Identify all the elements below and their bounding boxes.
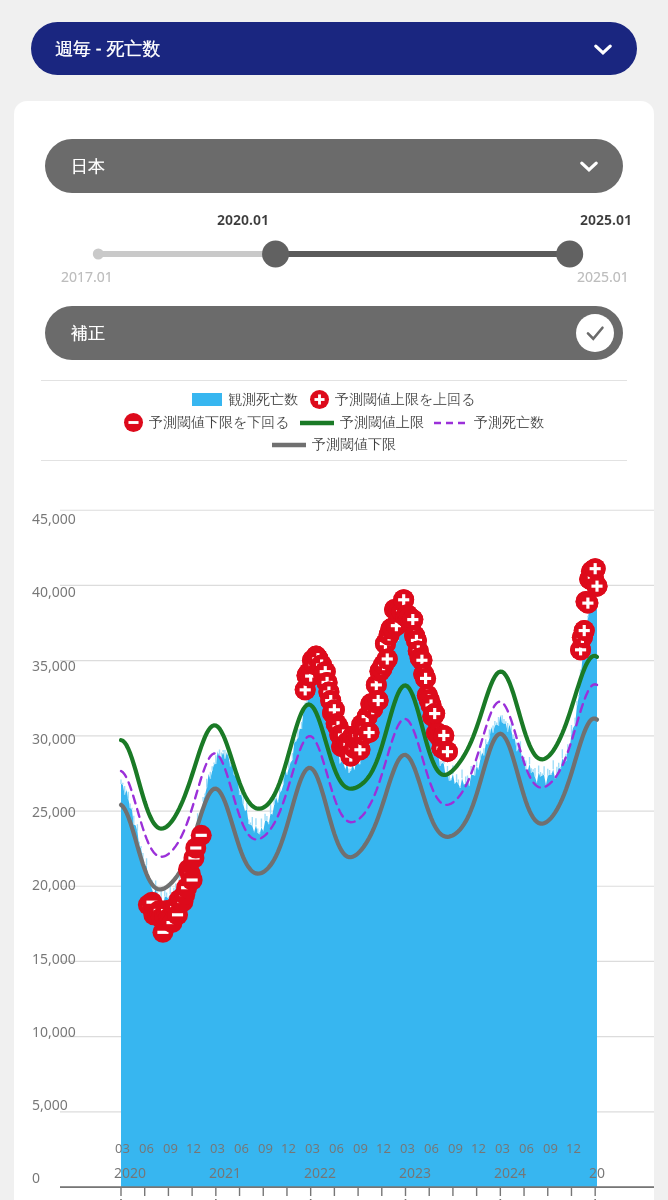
staticText: 09	[543, 1139, 558, 1157]
button[interactable]: 2020.01	[14, 210, 654, 288]
staticText: 2022	[304, 1163, 337, 1182]
staticText: 03	[115, 1139, 130, 1157]
staticText: 12	[281, 1139, 296, 1157]
staticText: 25,000	[32, 802, 76, 821]
staticText: 0	[32, 1168, 41, 1187]
staticText: 20,000	[32, 875, 76, 894]
staticText: 03	[495, 1139, 510, 1157]
staticText: 週毎 - 死亡数	[55, 36, 591, 61]
staticText: 10,000	[32, 1022, 76, 1041]
staticText: 03	[210, 1139, 225, 1157]
staticText: 2020.01	[217, 210, 269, 229]
staticText: 12	[566, 1139, 581, 1157]
staticText: 20	[589, 1163, 606, 1182]
staticText: 09	[258, 1139, 273, 1157]
staticText: 2021	[209, 1163, 242, 1182]
button[interactable]: 日本	[45, 139, 623, 193]
staticText: 09	[163, 1139, 178, 1157]
staticText: 12	[471, 1139, 486, 1157]
staticText: 2025.01	[577, 267, 629, 286]
staticText: 12	[376, 1139, 391, 1157]
staticText: 補正	[71, 323, 576, 344]
button[interactable]: 週毎 - 死亡数	[31, 22, 637, 75]
staticText: 5,000	[32, 1095, 68, 1114]
staticText: 2025.01	[580, 210, 632, 229]
staticText: 予測閾値上限	[340, 414, 424, 432]
staticText: 予測死亡数	[474, 414, 544, 432]
staticText: 06	[519, 1139, 534, 1157]
staticText: 12	[186, 1139, 201, 1157]
staticText: 2024	[494, 1163, 527, 1182]
staticText: 予測閾値上限を上回る	[335, 391, 476, 409]
staticText: 09	[448, 1139, 463, 1157]
staticText: 2017.01	[61, 267, 113, 286]
staticText: 日本	[71, 156, 577, 177]
staticText: 予測閾値下限を下回る	[149, 414, 290, 432]
staticText: 03	[305, 1139, 320, 1157]
staticText: 06	[234, 1139, 249, 1157]
staticText: 45,000	[32, 509, 76, 528]
staticText: 06	[424, 1139, 439, 1157]
staticText: 観測死亡数	[228, 391, 298, 409]
staticText: 40,000	[32, 582, 76, 601]
staticText: 06	[139, 1139, 154, 1157]
staticText: 30,000	[32, 729, 76, 748]
staticText: 2023	[399, 1163, 432, 1182]
button[interactable]: 補正	[45, 306, 623, 360]
staticText: 15,000	[32, 949, 76, 968]
other: 補正 有効	[576, 314, 614, 352]
staticText: 03	[400, 1139, 415, 1157]
staticText: 予測閾値下限	[312, 436, 396, 454]
staticText: 2020	[114, 1163, 147, 1182]
staticText: 09	[353, 1139, 368, 1157]
staticText: 06	[329, 1139, 344, 1157]
staticText: 35,000	[32, 656, 76, 675]
